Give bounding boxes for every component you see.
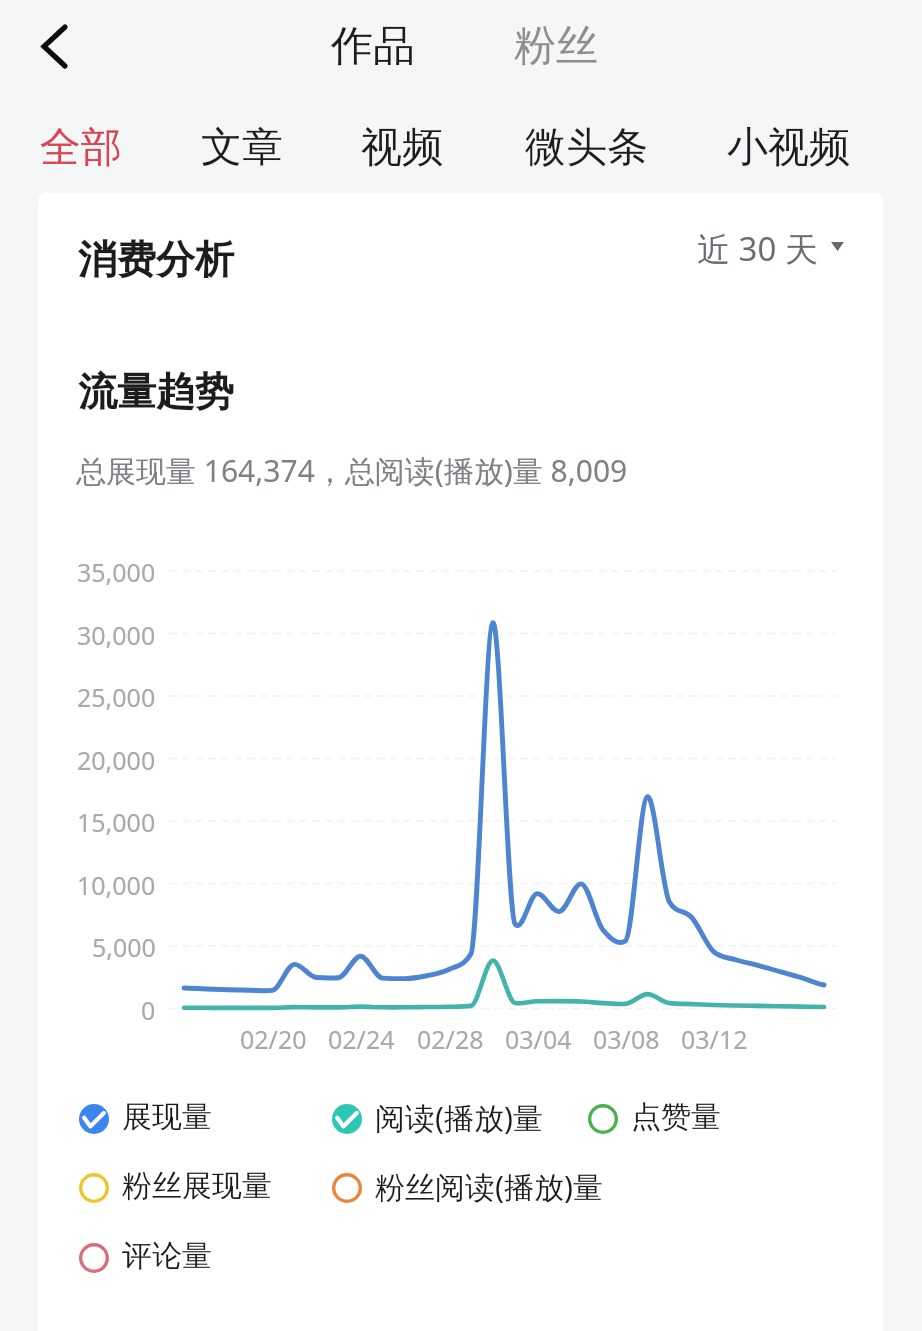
- staticText: 消费分析: [78, 235, 234, 284]
- staticText: 粉丝阅读(播放)量: [375, 1166, 603, 1207]
- staticText: 0: [141, 993, 156, 1027]
- button[interactable]: 全部: [34, 118, 128, 178]
- staticText: 流量趋势: [78, 367, 234, 416]
- button[interactable]: 粉丝: [508, 17, 604, 76]
- button[interactable]: 近 30 天: [691, 222, 850, 275]
- button[interactable]: 粉丝阅读(播放)量: [327, 1164, 611, 1208]
- staticText: 全部: [40, 122, 122, 174]
- staticText: 阅读(播放)量: [375, 1097, 543, 1138]
- staticText: 展现量: [122, 1098, 212, 1136]
- staticText: 粉丝: [514, 20, 598, 73]
- staticText: 03/12: [681, 1022, 748, 1056]
- staticText: 02/20: [240, 1022, 307, 1056]
- staticText: 评论量: [122, 1237, 212, 1275]
- button[interactable]: 点赞量: [583, 1095, 729, 1139]
- staticText: 粉丝展现量: [122, 1167, 272, 1205]
- staticText: 点赞量: [631, 1098, 721, 1136]
- staticText: 35,000: [77, 555, 156, 589]
- staticText: 20,000: [77, 743, 156, 777]
- button[interactable]: 评论量: [74, 1234, 220, 1278]
- button[interactable]: 小视频: [721, 118, 856, 178]
- staticText: 视频: [361, 122, 443, 174]
- staticText: 10,000: [77, 868, 156, 902]
- staticText: 作品: [331, 20, 415, 73]
- staticText: 30,000: [77, 618, 156, 652]
- button[interactable]: 微头条: [519, 118, 654, 178]
- button[interactable]: 作品: [325, 17, 421, 76]
- staticText: 小视频: [727, 122, 850, 174]
- staticText: 微头条: [525, 122, 648, 174]
- button[interactable]: Back: [22, 16, 82, 76]
- button[interactable]: 展现量: [74, 1095, 220, 1139]
- staticText: 02/24: [328, 1022, 395, 1056]
- staticText: 近 30 天: [697, 226, 818, 271]
- staticText: 文章: [201, 122, 283, 174]
- staticText: 25,000: [77, 680, 156, 714]
- staticText: 15,000: [77, 805, 156, 839]
- staticText: 总展现量 164,374，总阅读(播放)量 8,009: [76, 450, 628, 491]
- staticText: 5,000: [92, 930, 156, 964]
- button[interactable]: 视频: [355, 118, 449, 178]
- button[interactable]: 粉丝展现量: [74, 1164, 280, 1208]
- staticText: 02/28: [417, 1022, 484, 1056]
- staticText: 03/04: [505, 1022, 572, 1056]
- staticText: 03/08: [593, 1022, 660, 1056]
- button[interactable]: 阅读(播放)量: [327, 1095, 551, 1139]
- button[interactable]: 文章: [195, 118, 289, 178]
